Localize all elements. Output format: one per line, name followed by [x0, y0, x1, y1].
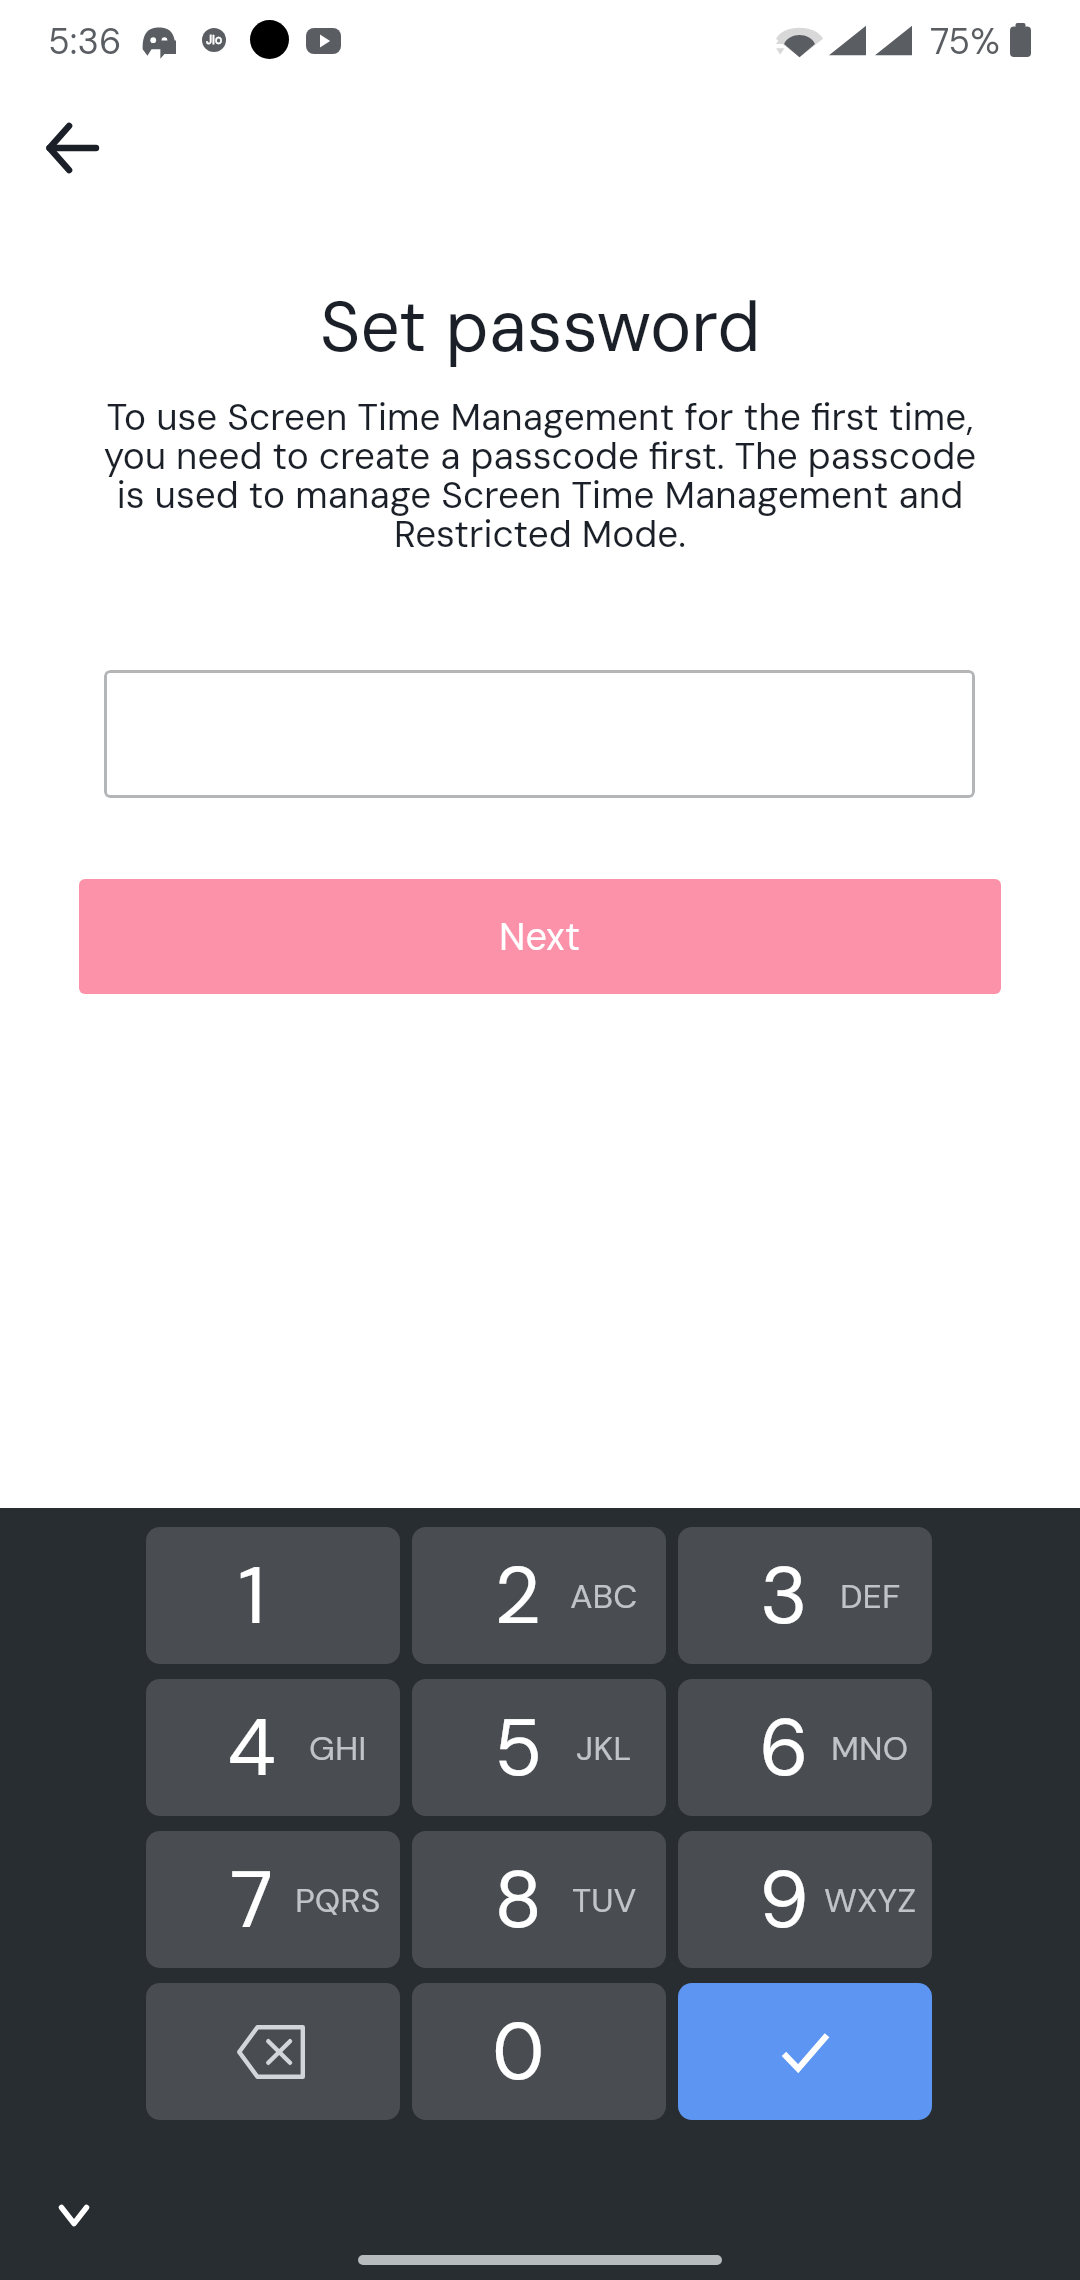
staticText: JKL — [576, 1726, 632, 1770]
button[interactable]: 5 — [412, 1679, 666, 1816]
staticText: 1 — [238, 1544, 266, 1648]
button[interactable]: Hide keyboard — [29, 2170, 119, 2260]
button[interactable]: 7 — [146, 1831, 400, 1968]
staticText: ABC — [570, 1574, 638, 1618]
staticText: 75% — [930, 18, 1000, 65]
staticText: 2 — [494, 1544, 542, 1648]
staticText: MNO — [831, 1726, 909, 1770]
staticText: Next — [499, 912, 581, 961]
staticText: 5:36 — [48, 18, 122, 65]
button[interactable]: 2 — [412, 1527, 666, 1664]
button[interactable]: 8 — [412, 1831, 666, 1968]
button[interactable]: 3 — [678, 1527, 932, 1664]
staticText: TUV — [572, 1878, 637, 1922]
button[interactable]: 4 — [146, 1679, 400, 1816]
staticText: DEF — [840, 1574, 901, 1618]
staticText: Set password — [0, 282, 1080, 372]
button[interactable]: 6 — [678, 1679, 932, 1816]
staticText: GHI — [309, 1726, 367, 1770]
button[interactable]: Password field — [104, 670, 975, 798]
button[interactable]: Delete — [146, 1983, 400, 2120]
staticText: 3 — [760, 1544, 808, 1648]
button[interactable]: 0 — [412, 1983, 666, 2120]
staticText: 5 — [494, 1696, 543, 1800]
staticText: 8 — [494, 1848, 543, 1952]
staticText: 9 — [759, 1848, 809, 1952]
staticText: 0 — [492, 2000, 545, 2104]
staticText: 4 — [227, 1696, 277, 1800]
staticText: 7 — [230, 1848, 274, 1952]
staticText: Jio — [206, 32, 223, 48]
button[interactable]: 1 — [146, 1527, 400, 1664]
staticText: PQRS — [295, 1878, 381, 1922]
button[interactable]: Done — [678, 1983, 932, 2120]
button[interactable]: Back — [24, 100, 120, 196]
button[interactable]: 9 — [678, 1831, 932, 1968]
button[interactable]: Next — [79, 879, 1001, 994]
staticText: 6 — [759, 1696, 809, 1800]
staticText: WXYZ — [824, 1878, 917, 1922]
staticText: To use Screen Time Management for the fi… — [90, 393, 990, 558]
